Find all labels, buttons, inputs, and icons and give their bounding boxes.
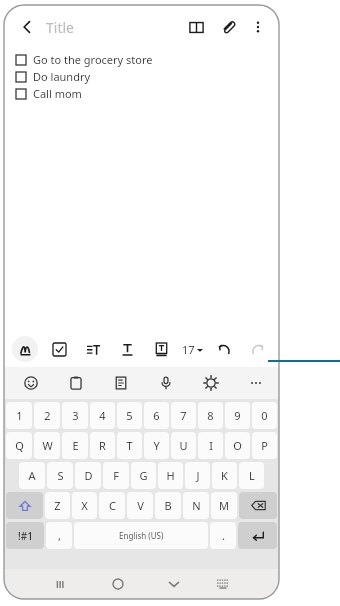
button[interactable]: Enter (238, 522, 277, 549)
button[interactable]: Hide keyboard (156, 569, 191, 599)
button[interactable]: R (90, 432, 115, 459)
staticText: F (113, 468, 119, 483)
button[interactable]: 2 (34, 402, 60, 429)
staticText: N (192, 498, 201, 513)
button[interactable]: 8 (198, 402, 223, 429)
staticText: E (72, 438, 79, 453)
button[interactable]: Switch keyboard (205, 569, 240, 599)
button[interactable]: P (252, 432, 277, 459)
staticText: 2 (44, 408, 51, 423)
staticText: Z (54, 498, 61, 513)
button[interactable]: Redo (245, 336, 271, 362)
staticText: O (233, 438, 242, 453)
button[interactable]: 1 (6, 402, 32, 429)
button[interactable]: Text box (148, 336, 174, 362)
staticText: J (196, 468, 200, 483)
button[interactable]: 9 (225, 402, 250, 429)
button[interactable]: 4 (90, 402, 115, 429)
button[interactable]: K (212, 462, 237, 489)
button[interactable]: Text style (114, 336, 140, 362)
button[interactable]: Translate (108, 370, 134, 396)
button[interactable]: 7 (171, 402, 196, 429)
button[interactable]: Attach (215, 14, 241, 40)
button[interactable]: Recents (44, 569, 79, 599)
button[interactable]: Clipboard (63, 370, 89, 396)
button[interactable]: J (185, 462, 210, 489)
button[interactable]: 5 (117, 402, 142, 429)
button[interactable]: X (72, 492, 97, 519)
button[interactable]: , (46, 522, 72, 549)
staticText: Y (153, 438, 160, 453)
button[interactable]: Keyboard settings (198, 370, 224, 396)
staticText: 4 (99, 408, 106, 423)
staticText: 3 (72, 408, 79, 423)
button[interactable]: Paragraph style (80, 336, 106, 362)
button[interactable]: 0 (252, 402, 277, 429)
button[interactable]: A (19, 462, 45, 489)
button[interactable]: 6 (144, 402, 169, 429)
staticText: L (249, 468, 255, 483)
staticText: Call mom (33, 86, 82, 101)
staticText: 17 (182, 342, 195, 357)
button[interactable]: . (210, 522, 236, 549)
button[interactable]: Voice input (153, 370, 179, 396)
staticText: P (261, 438, 268, 453)
button[interactable]: Call mom (16, 85, 279, 102)
button[interactable]: More keyboard options (243, 370, 269, 396)
button[interactable]: B (155, 492, 181, 519)
staticText: H (166, 468, 175, 483)
staticText: R (99, 438, 106, 453)
button[interactable]: Do laundry (16, 68, 279, 85)
staticText: 0 (261, 408, 268, 423)
staticText: 7 (180, 408, 187, 423)
button[interactable]: Handwriting (12, 336, 38, 362)
button[interactable]: G (131, 462, 156, 489)
button[interactable]: O (225, 432, 250, 459)
staticText: M (219, 498, 229, 513)
button[interactable]: E (62, 432, 88, 459)
staticText: K (221, 468, 228, 483)
button[interactable]: S (47, 462, 73, 489)
staticText: 1 (16, 408, 23, 423)
button[interactable]: U (171, 432, 196, 459)
button[interactable]: D (75, 462, 101, 489)
staticText: English (US) (119, 530, 164, 541)
button[interactable]: Backspace (239, 492, 277, 519)
staticText: Q (15, 438, 24, 453)
button[interactable]: More options (245, 14, 271, 40)
staticText: X (81, 498, 88, 513)
button[interactable]: F (103, 462, 129, 489)
button[interactable]: V (127, 492, 153, 519)
staticText: 5 (126, 408, 133, 423)
button[interactable]: Z (45, 492, 70, 519)
button[interactable]: M (211, 492, 237, 519)
staticText: T (126, 438, 133, 453)
button[interactable]: English (US) (74, 522, 208, 549)
staticText: Do laundry (33, 69, 91, 84)
button[interactable]: !#1 (6, 522, 44, 549)
staticText: . (222, 528, 225, 543)
button[interactable]: H (158, 462, 183, 489)
button[interactable]: Go to the grocery store (16, 51, 279, 68)
staticText: 8 (207, 408, 214, 423)
button[interactable]: Y (144, 432, 169, 459)
button[interactable]: N (183, 492, 209, 519)
staticText: W (42, 438, 53, 453)
button[interactable]: L (239, 462, 264, 489)
button[interactable]: 3 (62, 402, 88, 429)
button[interactable]: Shift (6, 492, 43, 519)
button[interactable]: Reading mode (183, 14, 209, 40)
button[interactable]: Checklist (46, 336, 72, 362)
button[interactable]: Undo (211, 336, 237, 362)
button[interactable]: W (34, 432, 60, 459)
button[interactable]: 17 (182, 342, 203, 357)
staticText: , (58, 528, 61, 543)
staticText: G (139, 468, 148, 483)
button[interactable]: Back (14, 14, 40, 40)
button[interactable]: I (198, 432, 223, 459)
button[interactable]: T (117, 432, 142, 459)
button[interactable]: Emoji (18, 370, 44, 396)
button[interactable]: Q (6, 432, 32, 459)
button[interactable]: Home (100, 569, 135, 599)
button[interactable]: C (99, 492, 125, 519)
